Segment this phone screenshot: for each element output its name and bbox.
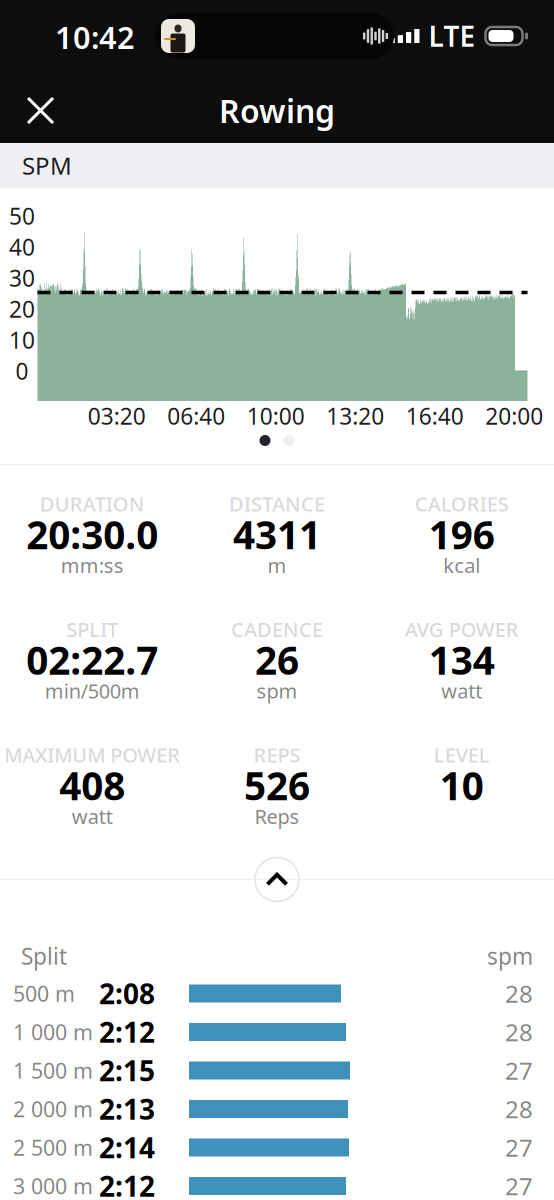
staticText: CADENCE [231, 616, 323, 643]
staticText: m [267, 552, 286, 579]
staticText: 28 [505, 978, 533, 1009]
staticText: spm [487, 941, 533, 971]
staticText: 10 [440, 760, 484, 811]
staticText: 30 [9, 263, 35, 293]
staticText: 10:00 [247, 401, 305, 431]
button[interactable]: 2 500 m [0, 1128, 554, 1167]
staticText: 13:20 [326, 401, 384, 431]
staticText: 1 000 m [13, 1018, 93, 1046]
staticText: 20:30.0 [26, 509, 158, 560]
button[interactable]: 500 m [0, 974, 554, 1013]
staticText: 408 [59, 760, 125, 811]
staticText: Split [21, 941, 67, 971]
staticText: SPLIT [66, 616, 118, 643]
staticText: kcal [443, 552, 480, 579]
staticText: 500 m [13, 979, 75, 1008]
staticText: DISTANCE [229, 490, 325, 517]
staticText: DURATION [40, 490, 145, 517]
staticText: 27 [505, 1055, 533, 1086]
button[interactable]: 3 000 m [0, 1167, 554, 1200]
staticText: 4311 [233, 509, 321, 560]
staticText: 2:12 [99, 1013, 155, 1051]
staticText: 27 [505, 1170, 533, 1200]
staticText: SPM [22, 150, 72, 181]
staticText: LTE [428, 17, 475, 55]
staticText: 2:13 [99, 1090, 155, 1128]
button[interactable]: 1 500 m [0, 1051, 554, 1090]
staticText: 50 [9, 201, 35, 231]
staticText: 2:08 [99, 975, 155, 1012]
staticText: 02:22.7 [26, 634, 158, 685]
staticText: AVG POWER [405, 616, 519, 643]
staticText: CALORIES [415, 490, 509, 517]
staticText: REPS [253, 741, 300, 768]
staticText: Rowing [219, 89, 335, 132]
staticText: 2 500 m [13, 1133, 93, 1162]
staticText: 2 000 m [13, 1095, 93, 1123]
staticText: 526 [244, 760, 310, 811]
staticText: 10 [9, 325, 35, 355]
staticText: min/500m [45, 677, 140, 704]
staticText: Reps [254, 803, 299, 830]
staticText: 3 000 m [13, 1172, 93, 1200]
staticText: 03:20 [88, 401, 146, 431]
button[interactable]: 1 000 m [0, 1013, 554, 1051]
button[interactable]: Collapse section [255, 857, 299, 901]
staticText: watt [72, 803, 113, 830]
staticText: 40 [9, 232, 35, 262]
staticText: 16:40 [406, 401, 464, 431]
staticText: 196 [429, 509, 495, 560]
staticText: mm:ss [61, 552, 124, 579]
staticText: 26 [255, 634, 299, 685]
staticText: 0 [15, 356, 28, 386]
staticText: 10:42 [55, 17, 135, 57]
staticText: 28 [505, 1093, 533, 1125]
staticText: 06:40 [167, 401, 225, 431]
staticText: 27 [505, 1132, 533, 1163]
staticText: 20:00 [485, 401, 543, 431]
staticText: 20 [9, 294, 35, 324]
staticText: spm [256, 677, 297, 704]
staticText: 1 500 m [13, 1056, 93, 1085]
button[interactable]: 2 000 m [0, 1090, 554, 1128]
staticText: watt [441, 677, 482, 704]
staticText: LEVEL [434, 741, 490, 768]
staticText: 28 [505, 1016, 533, 1048]
staticText: MAXIMUM POWER [4, 741, 180, 768]
staticText: 2:15 [99, 1052, 155, 1089]
staticText: 2:14 [99, 1129, 155, 1166]
button[interactable]: Close [13, 83, 68, 138]
staticText: 134 [429, 634, 495, 685]
staticText: 2:12 [99, 1167, 155, 1200]
